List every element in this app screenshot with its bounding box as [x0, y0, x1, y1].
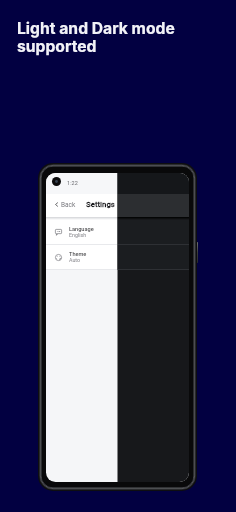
staticText: Back — [61, 201, 76, 209]
staticText: Back — [61, 201, 76, 209]
button[interactable]: Language — [46, 220, 189, 244]
button[interactable]: Language — [46, 220, 189, 244]
other: Back — [54, 202, 59, 207]
staticText: Auto — [69, 257, 81, 263]
staticText: Light and Dark mode supported — [17, 19, 175, 56]
staticText: Theme — [69, 251, 87, 258]
staticText: Language — [69, 226, 94, 233]
other: Back — [54, 202, 59, 207]
staticText: Auto — [69, 257, 81, 263]
staticText: English — [69, 232, 87, 238]
staticText: 1:22 — [67, 180, 78, 187]
button[interactable]: Back — [46, 194, 189, 217]
button[interactable]: Theme — [46, 245, 189, 269]
staticText: 1:22 — [67, 180, 78, 187]
staticText: Theme — [69, 251, 87, 258]
staticText: English — [69, 232, 87, 238]
staticText: Settings — [86, 200, 115, 209]
button[interactable]: Theme — [46, 245, 189, 269]
button[interactable]: Back — [46, 194, 189, 217]
staticText: Language — [69, 226, 94, 233]
staticText: Settings — [86, 200, 115, 209]
